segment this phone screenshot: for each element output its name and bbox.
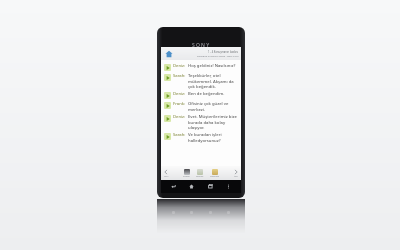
staticText: Ve buradan işleri halledyorsunuz? <box>188 132 238 143</box>
button[interactable]: Play audio <box>164 73 238 89</box>
staticText: Frank: <box>173 101 186 107</box>
other: Play audio <box>164 74 171 81</box>
button[interactable]: Play audio <box>164 101 238 112</box>
staticText: Deniz: <box>173 63 186 69</box>
staticText: Translate <box>210 175 220 178</box>
button[interactable]: Groups <box>196 169 204 178</box>
button[interactable]: Translate <box>210 169 220 178</box>
staticText: Ben de beğendim. <box>188 91 225 97</box>
other: Play audio <box>164 64 171 71</box>
button[interactable]: Menu <box>222 180 235 193</box>
staticText: Screen <box>183 175 190 178</box>
staticText: Groups <box>196 175 204 178</box>
staticText: Geri <box>164 175 169 178</box>
staticText: Deniz: <box>173 114 186 120</box>
button[interactable]: Play audio <box>164 63 238 71</box>
staticText: Sarah: <box>173 132 186 138</box>
staticText: Dialogue in Deniz's office - Bize 3 of 5 <box>197 54 239 57</box>
staticText: Evet. Müşterilerimiz bize burada daha ko… <box>188 114 238 130</box>
staticText: Deniz: <box>173 91 186 97</box>
staticText: Ofisiniz çok güzel ve merkezi. <box>188 101 238 112</box>
button[interactable]: Recents <box>204 180 217 193</box>
button[interactable]: Screen <box>183 169 190 178</box>
staticText: İleri <box>234 175 239 178</box>
other: Play audio <box>164 115 171 122</box>
staticText: Sarah: <box>173 73 186 79</box>
button[interactable]: Back <box>167 180 180 193</box>
staticText: SONY <box>192 42 211 49</box>
button[interactable]: Next <box>233 169 239 178</box>
staticText: 1 - 4 Konuşmanın baskısı <box>208 50 239 54</box>
other: Play audio <box>164 102 171 109</box>
staticText: Hoş geldiniz! Nasılsınız? <box>188 63 236 69</box>
button[interactable]: Previous <box>163 169 169 178</box>
button[interactable]: Play audio <box>164 91 238 99</box>
button[interactable]: Play audio <box>164 132 238 143</box>
button[interactable]: Home <box>185 180 198 193</box>
other: Play audio <box>164 133 171 140</box>
button[interactable]: Play audio <box>164 114 238 130</box>
other: Play audio <box>164 92 171 99</box>
button[interactable]: Home <box>163 48 174 59</box>
staticText: Teşekkürler, otel mükemmel. Akşamı da ço… <box>188 73 238 89</box>
